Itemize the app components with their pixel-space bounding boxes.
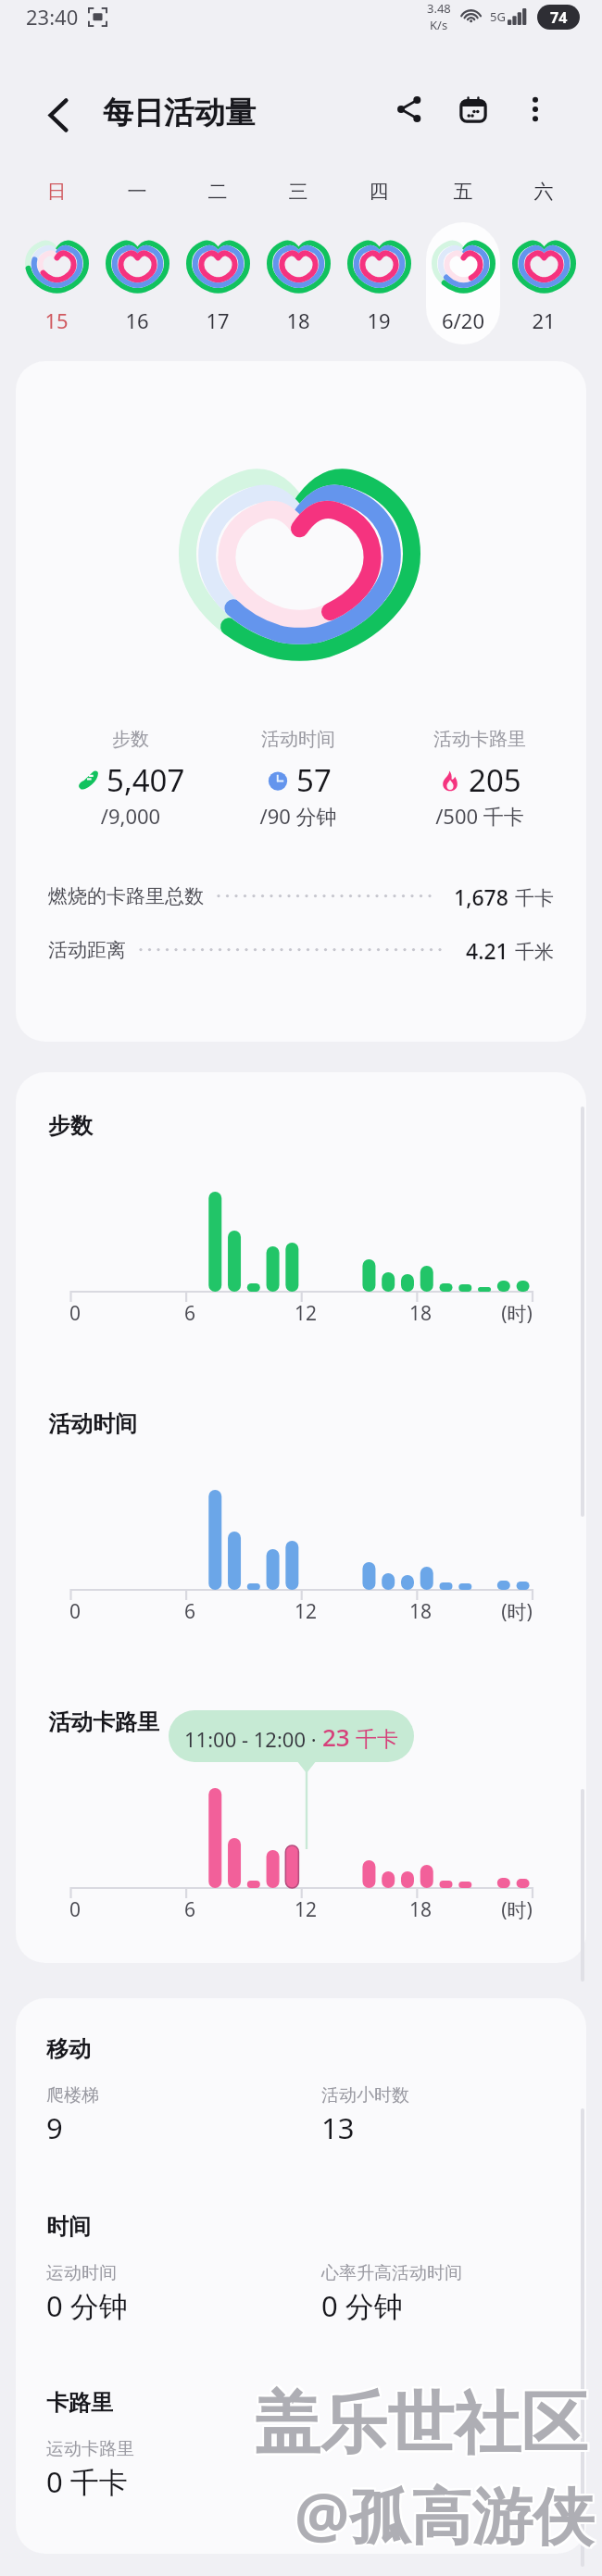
staticText: 18 [393, 1598, 448, 1625]
staticText: 移动 [46, 2035, 91, 2063]
staticText: /9,000 [47, 802, 214, 830]
staticText: 4.21 [466, 936, 508, 964]
staticText: (时) [489, 1896, 545, 1923]
button[interactable]: 四 [339, 176, 419, 344]
staticText: 盖乐世社区 [252, 2384, 585, 2469]
staticText: @孤高游侠 [295, 2472, 595, 2556]
staticText: 活动时间 [215, 728, 382, 751]
staticText: 6 [162, 1598, 218, 1625]
staticText: @孤高游侠 [293, 2470, 593, 2554]
staticText: 23:40 [26, 3, 79, 31]
staticText: K/s [430, 17, 448, 33]
staticText: 盖乐世社区 [254, 2381, 587, 2465]
staticText: 五 [423, 180, 503, 204]
staticText: 0 [47, 1598, 103, 1625]
staticText: 盖乐世社区 [256, 2381, 589, 2465]
staticText: 74 [550, 7, 568, 28]
button[interactable]: 三 [258, 176, 338, 344]
staticText: 18 [393, 1896, 448, 1923]
staticText: 12 [278, 1598, 333, 1625]
staticText: 21 [504, 306, 583, 334]
staticText: 0 分钟 [321, 2286, 403, 2325]
staticText: 盖乐世社区 [256, 2384, 589, 2469]
staticText: 205 [469, 759, 521, 801]
staticText: @孤高游侠 [295, 2474, 595, 2557]
staticText: 三 [258, 180, 338, 204]
staticText: 燃烧的卡路里总数 [48, 884, 204, 908]
staticText: 0 [47, 1300, 103, 1327]
button[interactable]: 六 [504, 176, 583, 344]
staticText: 1,678 [454, 882, 508, 910]
staticText: 每日活动量 [103, 94, 256, 132]
staticText: 盖乐世社区 [256, 2382, 589, 2467]
staticText: 23 [322, 1720, 350, 1753]
staticText: 千卡 [515, 886, 554, 910]
button[interactable]: Back [32, 89, 84, 141]
staticText: 卡路里 [46, 2389, 113, 2417]
staticText: 6/20 [423, 306, 503, 334]
staticText: 盖乐世社区 [254, 2384, 587, 2469]
staticText: @孤高游侠 [295, 2470, 595, 2554]
staticText: 18 [258, 306, 338, 334]
staticText: 运动时间 [46, 2262, 117, 2284]
staticText: 57 [296, 759, 332, 801]
staticText: 步数 [48, 1112, 93, 1140]
staticText: 0 [47, 1896, 103, 1923]
staticText: 18 [393, 1300, 448, 1327]
staticText: @孤高游侠 [293, 2474, 593, 2557]
staticText: 5,407 [107, 759, 185, 801]
staticText: 活动时间 [48, 1410, 137, 1438]
staticText: 活动卡路里 [396, 728, 563, 751]
staticText: 3.48 [427, 0, 451, 17]
staticText: 0 千卡 [46, 2462, 128, 2501]
staticText: (时) [489, 1300, 545, 1327]
staticText: 6 [162, 1300, 218, 1327]
button[interactable]: 五 [423, 176, 503, 344]
staticText: 17 [178, 306, 257, 334]
button[interactable]: Calendar [447, 83, 499, 135]
staticText: 盖乐世社区 [252, 2382, 585, 2467]
staticText: 5G [490, 8, 506, 25]
staticText: 步数 [47, 728, 214, 751]
staticText: @孤高游侠 [296, 2470, 596, 2554]
staticText: 运动卡路里 [46, 2438, 134, 2460]
staticText: (时) [489, 1598, 545, 1625]
staticText: 盖乐世社区 [254, 2382, 587, 2467]
staticText: 盖乐世社区 [252, 2381, 585, 2465]
staticText: 6 [162, 1896, 218, 1923]
staticText: @孤高游侠 [293, 2472, 593, 2556]
staticText: 12 [278, 1300, 333, 1327]
button[interactable]: 二 [178, 176, 257, 344]
button[interactable]: Share [383, 83, 435, 135]
staticText: 11:00 - 12:00 · [184, 1725, 317, 1753]
staticText: 一 [97, 180, 177, 204]
staticText: 活动卡路里 [48, 1708, 159, 1736]
staticText: 时间 [46, 2213, 91, 2241]
button[interactable]: 一 [97, 176, 177, 344]
staticText: 二 [178, 180, 257, 204]
staticText: 千米 [515, 940, 554, 964]
staticText: /500 千卡 [396, 802, 563, 830]
staticText: 9 [46, 2108, 63, 2147]
staticText: 16 [97, 306, 177, 334]
staticText: 活动小时数 [321, 2084, 409, 2107]
staticText: @孤高游侠 [296, 2474, 596, 2557]
staticText: 千卡 [356, 1726, 398, 1753]
button[interactable]: More options [509, 83, 561, 135]
staticText: @孤高游侠 [296, 2472, 596, 2556]
staticText: 爬楼梯 [46, 2084, 99, 2107]
staticText: 0 分钟 [46, 2286, 128, 2325]
staticText: 六 [504, 180, 583, 204]
staticText: 15 [17, 306, 96, 334]
staticText: 日 [17, 180, 96, 204]
staticText: 19 [339, 306, 419, 334]
staticText: 心率升高活动时间 [321, 2262, 462, 2284]
staticText: 12 [278, 1896, 333, 1923]
staticText: 13 [321, 2108, 355, 2147]
staticText: 活动距离 [48, 938, 126, 962]
button[interactable]: 日 [17, 176, 96, 344]
staticText: /90 分钟 [215, 802, 382, 830]
staticText: 四 [339, 180, 419, 204]
